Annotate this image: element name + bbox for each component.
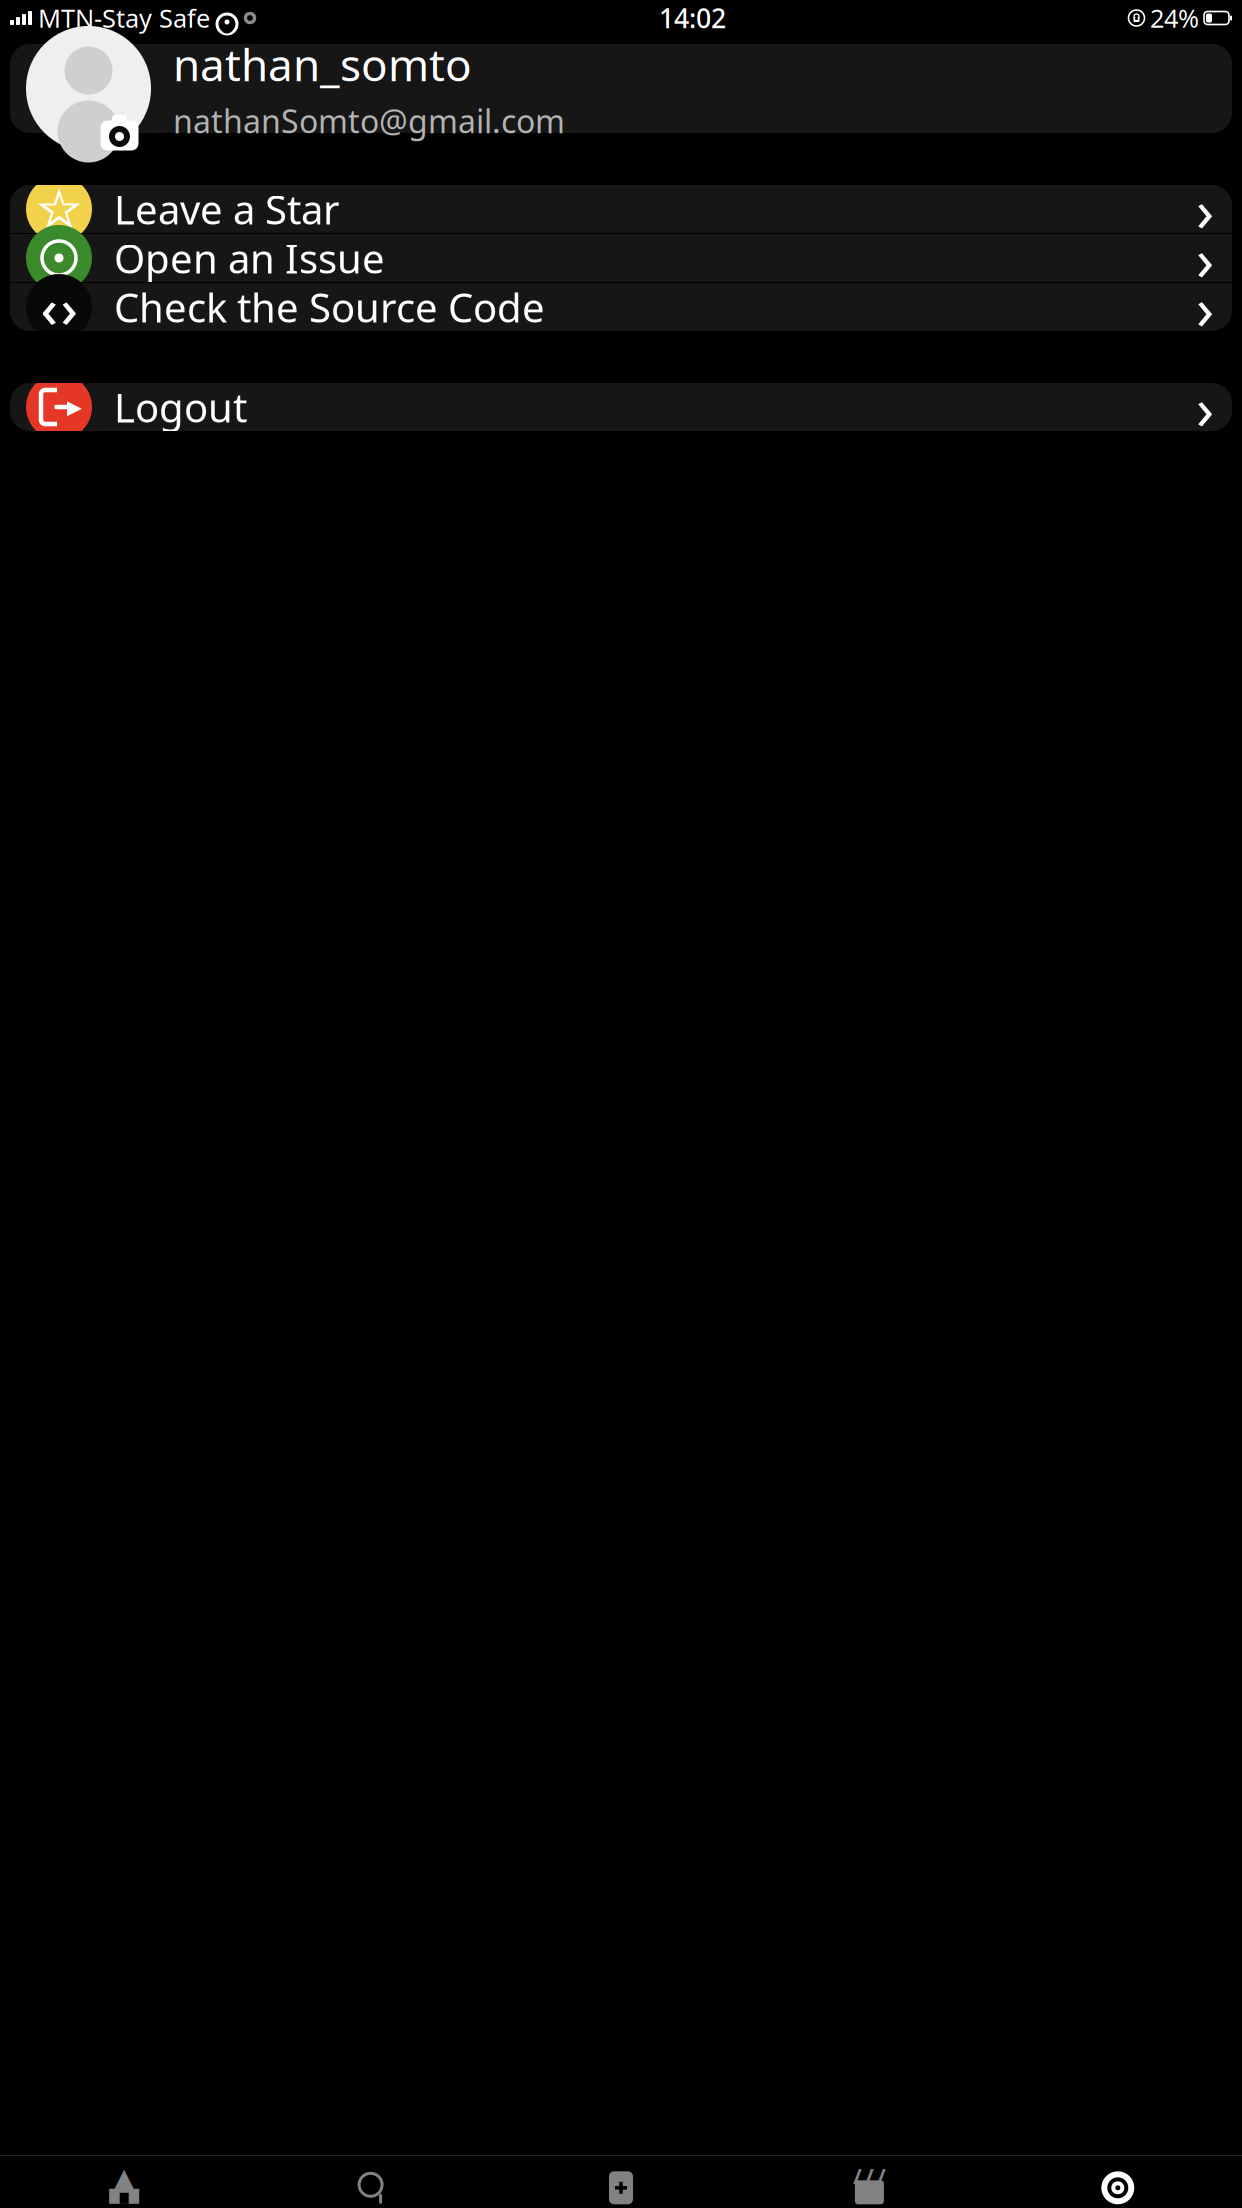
staticText: ▶ — [66, 396, 81, 418]
staticText: / — [865, 2162, 874, 2190]
staticText: / — [877, 2162, 886, 2190]
button[interactable]: Home — [0, 2164, 248, 2208]
staticText: nathanSomto@gmail.com — [173, 99, 565, 142]
staticText: MTN-Stay Safe — [38, 1, 210, 35]
staticText: › — [1196, 170, 1214, 248]
button[interactable]: ★ — [10, 185, 1232, 233]
staticText: › — [1196, 368, 1214, 446]
button[interactable]: nathan_somto — [10, 44, 1232, 133]
button[interactable]: ‹ — [10, 283, 1232, 331]
staticText: 24% — [1150, 1, 1199, 35]
staticText: › — [1196, 268, 1214, 346]
staticText: / — [853, 2162, 862, 2190]
staticText: ★ — [34, 177, 84, 241]
staticText: ★ — [42, 188, 75, 230]
button[interactable]: Open an Issue — [10, 234, 1232, 282]
button[interactable]: Search — [248, 2164, 497, 2208]
staticText: Open an Issue — [114, 231, 385, 284]
staticText: › — [1196, 219, 1214, 297]
button[interactable]: Reels — [745, 2164, 994, 2208]
staticText: ‹ — [40, 272, 57, 342]
button[interactable]: Create — [497, 2164, 745, 2208]
staticText: ▲ — [110, 2160, 138, 2201]
staticText: › — [60, 272, 77, 342]
staticText: nathan_somto — [173, 35, 472, 93]
staticText: Check the Source Code — [114, 280, 545, 333]
button[interactable]: ▶ — [10, 383, 1232, 431]
staticText: Logout — [114, 380, 247, 433]
staticText: Leave a Star — [114, 182, 340, 235]
staticText: 14:02 — [659, 0, 726, 36]
button[interactable]: Settings — [994, 2164, 1242, 2208]
